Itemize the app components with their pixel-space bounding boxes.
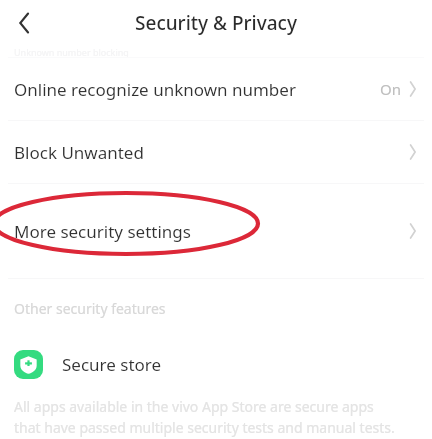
button[interactable]: Back bbox=[4, 3, 44, 43]
staticText: Secure store bbox=[62, 353, 162, 376]
button[interactable]: More security settings bbox=[0, 184, 432, 278]
button[interactable]: Secure store bbox=[0, 337, 432, 391]
staticText: All apps available in the vivo App Store… bbox=[14, 397, 374, 416]
staticText: Security & Privacy bbox=[135, 10, 297, 36]
staticText: that have passed multiple security tests… bbox=[14, 418, 395, 437]
staticText: On bbox=[380, 79, 401, 99]
staticText: Other security features bbox=[14, 299, 166, 318]
staticText: More security settings bbox=[14, 220, 191, 243]
staticText: Unknown number blocking bbox=[14, 46, 129, 58]
button[interactable]: Online recognize unknown number bbox=[0, 58, 432, 120]
staticText: Block Unwanted bbox=[14, 141, 144, 164]
staticText: Online recognize unknown number bbox=[14, 78, 296, 101]
button[interactable]: Block Unwanted bbox=[0, 121, 432, 183]
